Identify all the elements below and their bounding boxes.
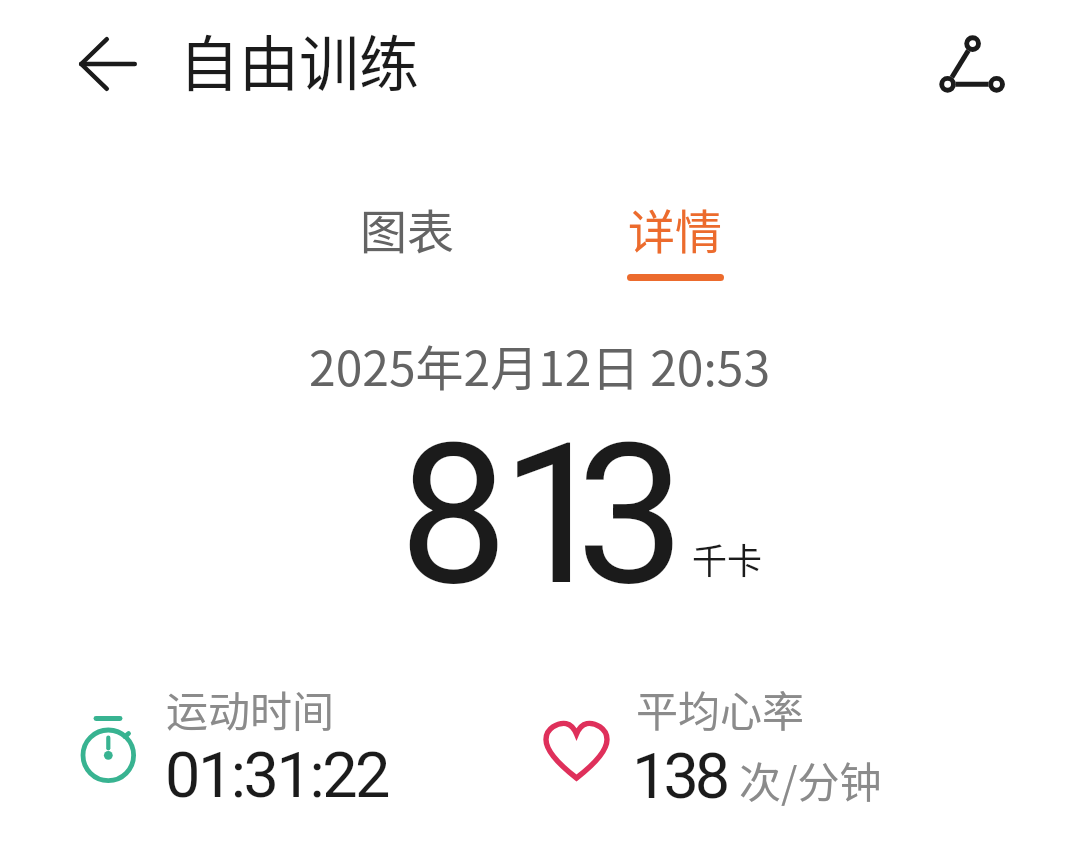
staticText: 千卡 (692, 533, 763, 584)
button[interactable]: 图表 (286, 174, 528, 286)
button[interactable]: 平均心率 (530, 676, 950, 816)
staticText: 平均心率 (636, 678, 805, 739)
staticText: 次/分钟 (739, 749, 882, 810)
button[interactable]: Share (911, 10, 1007, 94)
button[interactable]: 详情 (554, 174, 796, 292)
staticText: 运动时间 (166, 678, 335, 739)
staticText: 2025年2月12日 20:53 (309, 330, 771, 400)
staticText: 3 (576, 402, 686, 629)
staticText: 1 (501, 402, 611, 629)
staticText: 详情 (628, 194, 722, 262)
staticText: 图表 (360, 194, 454, 262)
button[interactable]: 运动时间 (60, 676, 480, 816)
button[interactable]: Back (66, 32, 150, 96)
staticText: 01:31:22 (165, 739, 388, 813)
staticText: 138 (632, 740, 727, 814)
staticText: 8 (399, 402, 509, 629)
staticText: 自由训练 (179, 16, 419, 103)
